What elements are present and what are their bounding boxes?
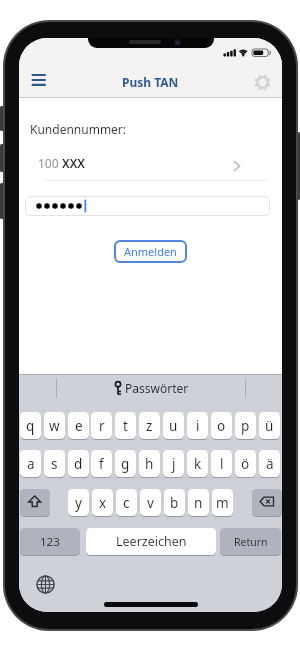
staticText: f xyxy=(99,455,104,473)
button[interactable]: 100 xyxy=(24,152,269,180)
staticText: k xyxy=(194,455,202,473)
button[interactable]: o xyxy=(211,412,232,439)
button[interactable]: 123 xyxy=(20,528,80,555)
button[interactable]: Anmelden xyxy=(114,240,187,263)
button[interactable]: t xyxy=(115,412,136,439)
staticText: y xyxy=(75,494,82,512)
staticText: d xyxy=(74,455,83,473)
staticText: ü xyxy=(265,417,274,435)
button[interactable]: a xyxy=(20,450,41,477)
button[interactable]: y xyxy=(68,489,89,516)
staticText: u xyxy=(169,417,178,435)
staticText: l xyxy=(220,455,224,473)
staticText: ä xyxy=(266,455,274,473)
button[interactable]: p xyxy=(235,412,256,439)
staticText: s xyxy=(51,455,58,473)
button[interactable] xyxy=(25,68,53,94)
staticText: Passwörter xyxy=(125,380,189,396)
staticText: 123 xyxy=(40,534,60,550)
button[interactable]: i xyxy=(187,412,208,439)
button[interactable]: l xyxy=(211,450,232,477)
button[interactable]: w xyxy=(44,412,65,439)
staticText: p xyxy=(241,417,250,435)
button[interactable]: Leerzeichen xyxy=(86,528,216,555)
button[interactable]: d xyxy=(68,450,89,477)
staticText: ö xyxy=(241,455,250,473)
button[interactable]: h xyxy=(139,450,160,477)
staticText: Anmelden xyxy=(124,244,177,259)
button[interactable] xyxy=(20,489,50,516)
staticText: g xyxy=(121,455,130,473)
staticText: r xyxy=(99,417,105,435)
button[interactable]: c xyxy=(116,489,137,516)
staticText: c xyxy=(123,494,130,512)
button[interactable]: ü xyxy=(259,412,280,439)
staticText: i xyxy=(196,417,200,435)
staticText: b xyxy=(170,494,179,512)
button[interactable]: n xyxy=(188,489,209,516)
staticText: Push TAN xyxy=(122,74,179,90)
button[interactable]: f xyxy=(91,450,112,477)
button[interactable]: q xyxy=(20,412,41,439)
button[interactable]: Return xyxy=(220,528,281,555)
button[interactable]: z xyxy=(139,412,160,439)
button[interactable] xyxy=(35,574,56,595)
button[interactable]: k xyxy=(187,450,208,477)
staticText: j xyxy=(172,455,176,473)
staticText: Kundennummer: xyxy=(30,121,127,137)
staticText: XXX xyxy=(62,155,85,171)
staticText: a xyxy=(27,455,35,473)
button[interactable]: v xyxy=(140,489,161,516)
button[interactable]: e xyxy=(68,412,89,439)
button[interactable]: j xyxy=(163,450,184,477)
button[interactable] xyxy=(252,489,282,516)
staticText: h xyxy=(145,455,154,473)
button[interactable]: s xyxy=(44,450,65,477)
button[interactable]: m xyxy=(212,489,233,516)
staticText: z xyxy=(146,417,153,435)
staticText: t xyxy=(123,417,128,435)
button[interactable]: Passwörter xyxy=(57,375,245,402)
staticText: o xyxy=(217,417,226,435)
button[interactable]: b xyxy=(164,489,185,516)
staticText: w xyxy=(49,417,60,435)
button[interactable]: ö xyxy=(235,450,256,477)
staticText: 100 xyxy=(38,155,59,171)
button[interactable]: r xyxy=(91,412,112,439)
button[interactable]: x xyxy=(92,489,113,516)
button[interactable]: ä xyxy=(259,450,280,477)
button[interactable]: u xyxy=(163,412,184,439)
staticText: Leerzeichen xyxy=(116,533,187,550)
staticText: e xyxy=(75,417,83,435)
staticText: v xyxy=(147,494,154,512)
staticText: m xyxy=(216,494,229,512)
staticText: n xyxy=(194,494,203,512)
staticText: Return xyxy=(234,535,268,549)
button[interactable]: g xyxy=(115,450,136,477)
button[interactable] xyxy=(25,196,270,216)
staticText: x xyxy=(99,494,107,512)
staticText: q xyxy=(26,417,35,435)
button[interactable] xyxy=(251,71,275,95)
